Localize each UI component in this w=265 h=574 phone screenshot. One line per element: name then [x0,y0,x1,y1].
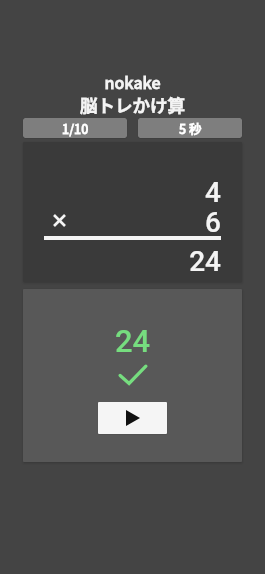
staticText: 6 [23,206,221,239]
staticText: 24 [23,323,242,359]
other: Correct [119,365,147,385]
button[interactable]: 4 [23,142,242,282]
staticText: 24 [23,245,221,278]
staticText: 5 秒 [179,119,202,137]
button[interactable]: Next question [98,402,167,434]
button[interactable]: 1/10 [23,118,127,138]
staticText: 4 [23,176,221,209]
button[interactable]: 5 秒 [138,118,242,138]
staticText: 1/10 [62,119,89,137]
staticText: nokake [0,70,265,93]
staticText: 脳トレかけ算 [0,92,265,117]
